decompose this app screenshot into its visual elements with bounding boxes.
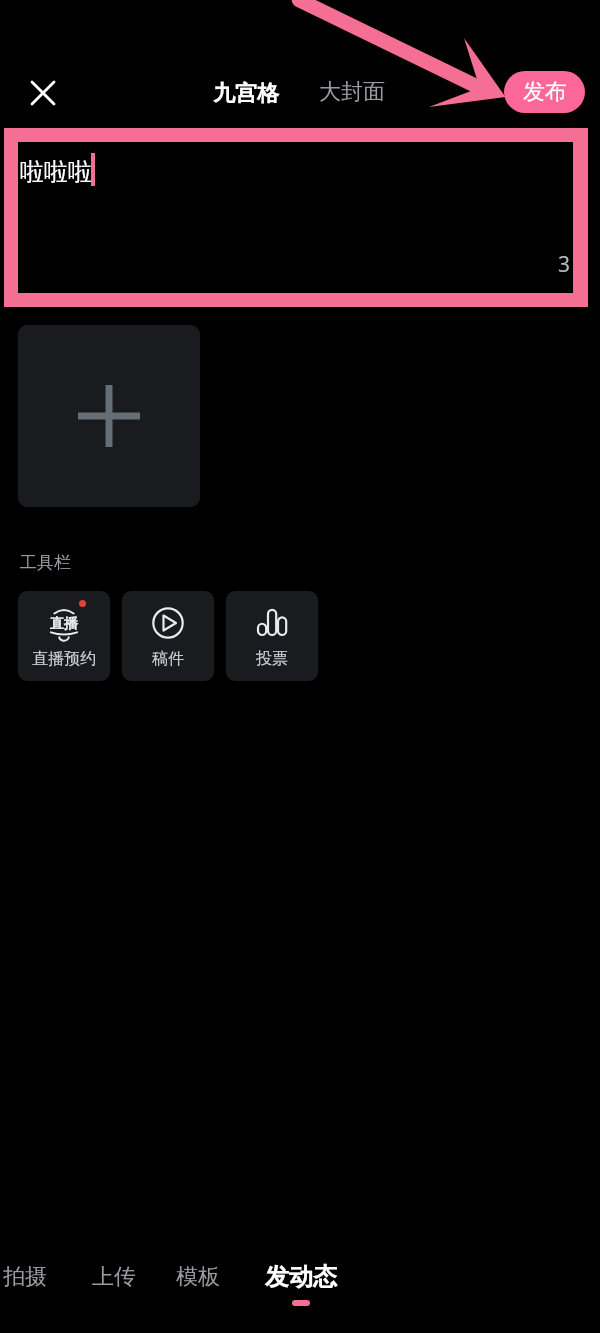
staticText: 发动态 xyxy=(265,1262,337,1292)
staticText: 九宫格 xyxy=(213,80,279,108)
button[interactable]: 上传 xyxy=(76,1249,152,1305)
staticText: 大封面 xyxy=(319,78,385,106)
staticText: 拍摄 xyxy=(3,1263,47,1291)
staticText: 稿件 xyxy=(152,649,184,669)
staticText: 直播 xyxy=(50,615,78,633)
staticText: 工具栏 xyxy=(20,552,71,573)
staticText: 上传 xyxy=(92,1263,136,1291)
button[interactable]: Close xyxy=(21,71,65,115)
button[interactable]: 拍摄 xyxy=(0,1249,63,1305)
button[interactable]: 直播 xyxy=(18,591,110,681)
button[interactable]: Post text input xyxy=(18,142,573,293)
button[interactable]: 发动态 xyxy=(249,1248,353,1320)
staticText: 3 xyxy=(558,250,571,279)
staticText: 模板 xyxy=(176,1263,220,1291)
staticText: 直播预约 xyxy=(32,649,96,669)
button[interactable]: 模板 xyxy=(160,1249,236,1305)
staticText: 投票 xyxy=(256,649,288,669)
button[interactable]: 大封面 xyxy=(311,73,393,111)
staticText: 啦啦啦 xyxy=(20,157,92,187)
button[interactable]: 发布 xyxy=(504,71,585,113)
button[interactable]: 稿件 xyxy=(122,591,214,681)
button[interactable]: Add image xyxy=(18,325,200,507)
staticText: 发布 xyxy=(523,78,567,106)
button[interactable]: 投票 xyxy=(226,591,318,681)
button[interactable]: 九宫格 xyxy=(205,75,287,113)
